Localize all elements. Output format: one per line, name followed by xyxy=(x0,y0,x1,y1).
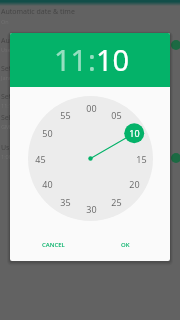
button[interactable] xyxy=(0,139,180,165)
staticText: Set date xyxy=(1,64,28,74)
staticText: 11:10 AM xyxy=(1,102,25,109)
staticText: GMT+00:00 Greenwich Mean Time xyxy=(1,123,90,130)
staticText: 1:00 PM xyxy=(1,153,22,160)
button[interactable]: 10 xyxy=(96,40,130,76)
button[interactable]: 20 xyxy=(125,177,143,191)
button[interactable] xyxy=(0,3,180,29)
staticText: 10 xyxy=(129,127,140,139)
staticText: Automatic date & time xyxy=(1,7,75,17)
button[interactable]: 05 xyxy=(107,108,125,122)
button[interactable] xyxy=(0,88,180,114)
staticText: Select time zone xyxy=(1,113,55,123)
button[interactable]: 15 xyxy=(132,152,150,166)
button[interactable]: 45 xyxy=(31,152,49,166)
staticText: January 6, 2020 xyxy=(1,74,41,81)
button[interactable] xyxy=(0,32,180,58)
button[interactable]: 55 xyxy=(56,108,74,122)
button[interactable]: 25 xyxy=(107,195,125,209)
button[interactable]: OK xyxy=(109,236,142,254)
staticText: 20 xyxy=(129,178,140,190)
button[interactable]: CANCEL xyxy=(32,236,74,254)
staticText: Set time xyxy=(1,92,28,102)
button[interactable]: 40 xyxy=(38,177,56,191)
staticText: 25 xyxy=(111,196,122,208)
staticText: 35 xyxy=(60,196,71,208)
staticText: : xyxy=(88,40,96,76)
staticText: 45 xyxy=(35,153,46,165)
staticText: Use 24-hour format xyxy=(1,143,66,153)
button[interactable]: 10 xyxy=(125,126,143,140)
staticText: 50 xyxy=(42,127,53,139)
button[interactable]: 11 xyxy=(54,40,88,76)
staticText: 15 xyxy=(136,153,147,165)
button[interactable]: 50 xyxy=(38,126,56,140)
staticText: Automatic time zone xyxy=(1,36,69,46)
other: Toggle automatic time zone xyxy=(171,40,180,50)
staticText: Use network-provided time zone xyxy=(1,46,86,53)
staticText: 00 xyxy=(86,102,97,114)
button[interactable] xyxy=(0,109,180,135)
button[interactable]: 35 xyxy=(56,195,74,209)
button[interactable]: 00 xyxy=(82,101,100,115)
other: Toggle 24-hour format xyxy=(171,153,180,163)
button[interactable]: 30 xyxy=(82,202,100,216)
button[interactable] xyxy=(0,60,180,86)
staticText: 55 xyxy=(60,109,71,121)
staticText: OK xyxy=(121,241,130,249)
staticText: 30 xyxy=(86,203,97,215)
staticText: 40 xyxy=(42,178,53,190)
staticText: CANCEL xyxy=(42,241,65,249)
staticText: 05 xyxy=(111,109,122,121)
